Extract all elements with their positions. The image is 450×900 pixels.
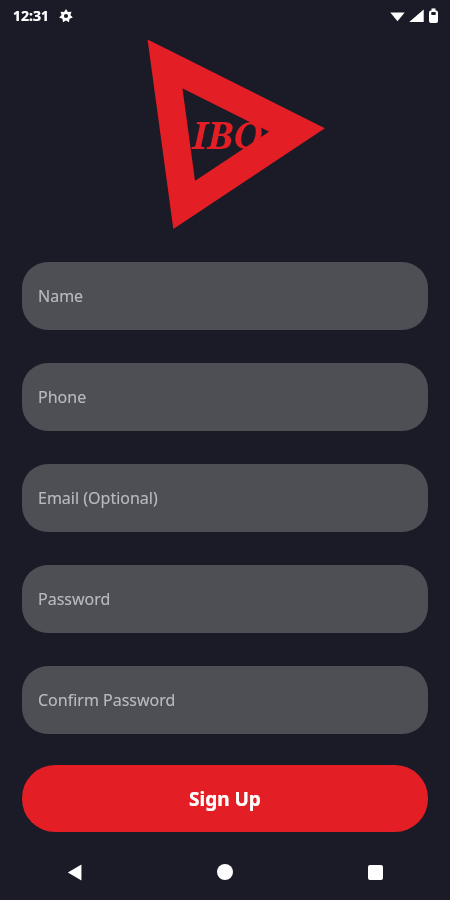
button[interactable]: Phone [22, 363, 428, 431]
button[interactable]: Email (Optional) [22, 464, 428, 532]
staticText: Password [38, 588, 111, 610]
staticText: Confirm Password [38, 689, 176, 711]
staticText: IBO [192, 108, 263, 160]
button[interactable]: Home [150, 844, 300, 900]
button[interactable]: Name [22, 262, 428, 330]
button[interactable]: Password [22, 565, 428, 633]
button[interactable]: Back [0, 844, 150, 900]
button[interactable]: Sign Up [22, 765, 428, 832]
staticText: 12:31 [13, 6, 49, 25]
button[interactable]: Confirm Password [22, 666, 428, 734]
staticText: Email (Optional) [38, 487, 158, 509]
staticText: Sign Up [189, 786, 261, 812]
staticText: Name [38, 285, 84, 307]
staticText: Phone [38, 386, 87, 408]
button[interactable]: Recents [300, 844, 450, 900]
